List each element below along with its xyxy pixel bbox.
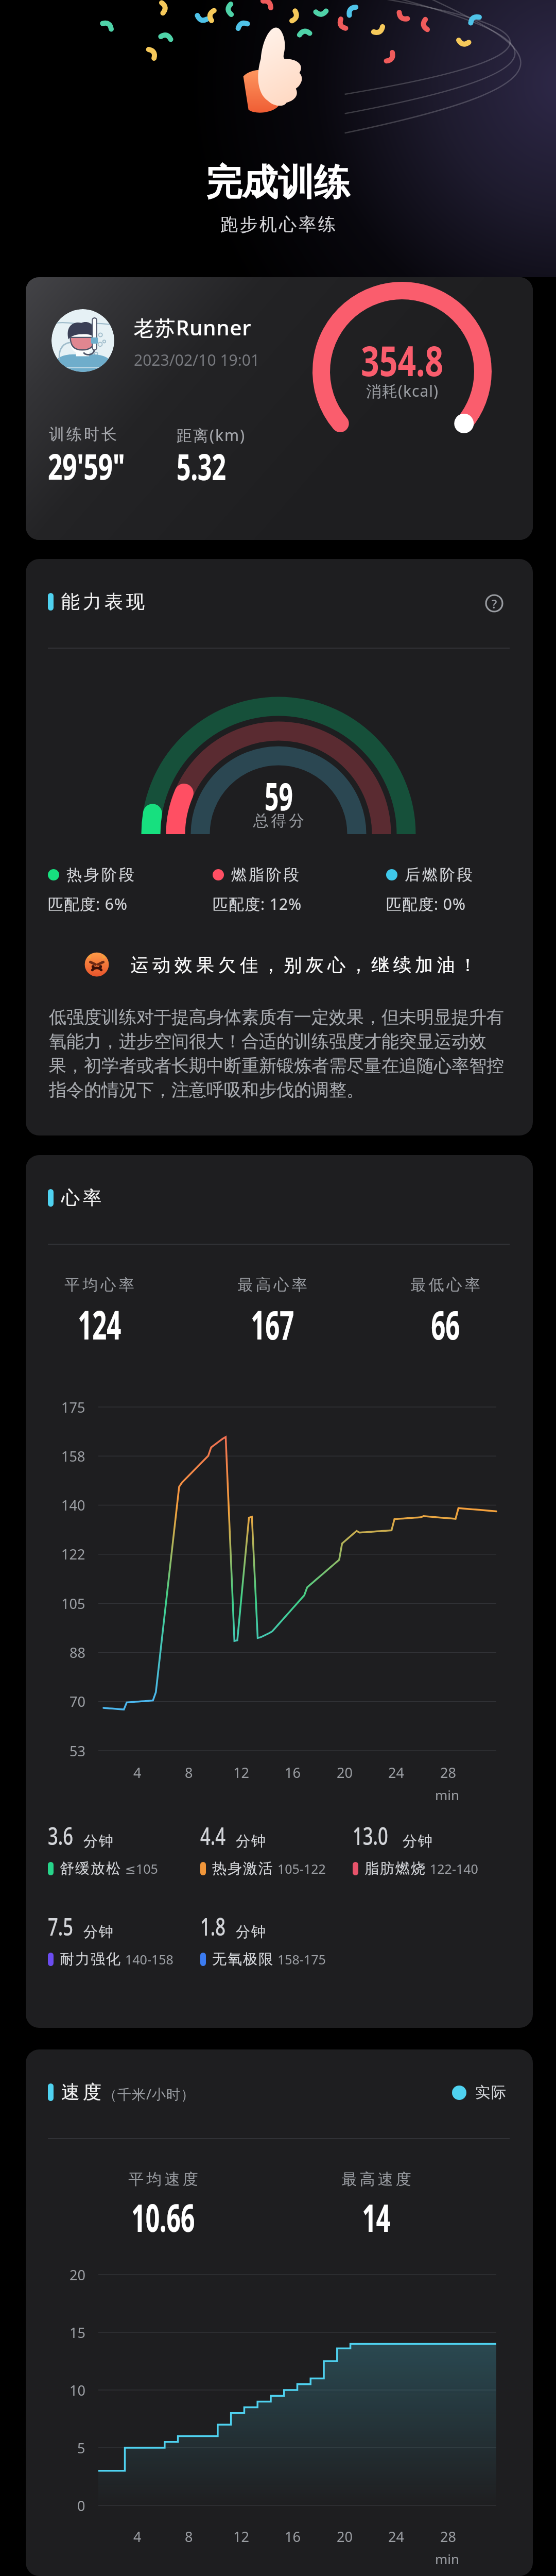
staticText: 实际	[475, 2083, 507, 2102]
staticText: 跑步机心率练	[219, 213, 337, 235]
staticText: min	[435, 2550, 460, 2568]
staticText: 124	[78, 1297, 121, 1351]
staticText: 距离(km)	[177, 425, 246, 446]
staticText: 122	[61, 1545, 85, 1564]
staticText: 5.32	[177, 442, 226, 490]
staticText: 总得分	[252, 811, 306, 831]
button[interactable]: Help	[478, 587, 511, 620]
staticText: min	[435, 1786, 460, 1804]
staticText: 能力表现	[60, 590, 146, 613]
staticText: 13.0	[353, 1819, 388, 1852]
staticText: 140	[61, 1496, 85, 1515]
staticText: 175	[61, 1398, 85, 1417]
staticText: 训练时长	[48, 425, 118, 444]
staticText: 平均速度	[127, 2170, 199, 2189]
button[interactable]: 实际	[452, 2083, 507, 2102]
staticText: 105	[61, 1594, 85, 1613]
staticText: 88	[69, 1643, 85, 1662]
staticText: 59	[265, 770, 293, 822]
staticText: 8	[185, 2527, 193, 2546]
staticText: 53	[69, 1741, 85, 1760]
staticText: 24	[388, 2527, 404, 2546]
staticText: 最高心率	[236, 1275, 308, 1295]
staticText: 老苏Runner	[134, 313, 252, 342]
staticText: 4	[133, 2527, 142, 2546]
staticText: 最高速度	[340, 2170, 412, 2189]
staticText: 10.66	[131, 2192, 195, 2243]
button[interactable]: 燃脂阶段	[213, 865, 302, 914]
staticText: 28	[440, 2527, 456, 2546]
staticText: 消耗(kcal)	[366, 380, 439, 401]
staticText: 最低心率	[409, 1275, 481, 1295]
staticText: 心率	[60, 1186, 103, 1209]
staticText: （千米/小时）	[103, 2084, 196, 2104]
staticText: 热身激活	[212, 1859, 273, 1877]
staticText: 354.8	[361, 331, 444, 388]
staticText: 140-158	[125, 1951, 173, 1968]
staticText: 无氧极限	[212, 1950, 273, 1968]
staticText: 低强度训练对于提高身体素质有一定效果，但未明显提升有氧能力，进步空间很大！合适的…	[49, 1006, 512, 1101]
staticText: 1.8	[200, 1909, 225, 1943]
button[interactable]: 后燃阶段	[386, 865, 474, 914]
staticText: 16	[285, 2527, 301, 2546]
staticText: 14	[362, 2192, 391, 2243]
staticText: 平均心率	[63, 1275, 135, 1295]
staticText: 舒缓放松	[59, 1859, 121, 1877]
staticText: ≤105	[125, 1860, 158, 1877]
staticText: 运动效果欠佳，别灰心，继续加油！	[129, 954, 479, 976]
staticText: 24	[388, 1763, 404, 1782]
staticText: 29'59"	[48, 442, 125, 490]
staticText: 158	[61, 1447, 85, 1466]
staticText: 匹配度: 12%	[213, 893, 302, 914]
staticText: 完成训练	[206, 160, 350, 206]
staticText: 匹配度: 6%	[48, 893, 128, 914]
staticText: 70	[69, 1692, 85, 1711]
staticText: 122-140	[430, 1860, 478, 1877]
staticText: 28	[440, 1763, 456, 1782]
button[interactable]: 心率	[48, 1186, 103, 1209]
staticText: 2023/02/10 19:01	[134, 349, 260, 370]
staticText: 167	[251, 1297, 294, 1351]
staticText: 5	[77, 2438, 85, 2458]
staticText: 耐力强化	[59, 1950, 121, 1968]
staticText: 20	[69, 2265, 85, 2284]
button[interactable]: 速度	[48, 2080, 196, 2104]
staticText: 12	[233, 1763, 249, 1782]
staticText: 3.6	[48, 1819, 73, 1852]
staticText: 分钟	[235, 1923, 266, 1941]
staticText: 7.5	[48, 1909, 73, 1943]
staticText: 分钟	[83, 1832, 114, 1850]
staticText: 热身阶段	[65, 865, 135, 885]
staticText: 8	[185, 1763, 193, 1782]
staticText: 16	[285, 1763, 301, 1782]
staticText: 匹配度: 0%	[386, 893, 466, 914]
staticText: 分钟	[235, 1832, 266, 1850]
staticText: 脂肪燃烧	[364, 1859, 426, 1877]
staticText: 20	[337, 1763, 353, 1782]
staticText: 158-175	[277, 1951, 326, 1968]
staticText: 速度	[60, 2080, 103, 2104]
staticText: 105-122	[277, 1860, 326, 1877]
staticText: 后燃阶段	[404, 865, 474, 885]
staticText: 20	[337, 2527, 353, 2546]
staticText: 燃脂阶段	[230, 865, 300, 885]
staticText: 66	[431, 1297, 460, 1351]
staticText: ?	[492, 596, 497, 612]
staticText: 4	[133, 1763, 142, 1782]
staticText: 12	[233, 2527, 249, 2546]
staticText: 10	[69, 2381, 85, 2400]
staticText: 分钟	[402, 1832, 433, 1850]
staticText: 0	[77, 2496, 85, 2515]
staticText: 分钟	[83, 1923, 114, 1941]
staticText: 4.4	[200, 1819, 225, 1852]
staticText: 15	[69, 2323, 85, 2342]
button[interactable]: 能力表现	[48, 590, 146, 613]
button[interactable]: 热身阶段	[48, 865, 135, 914]
